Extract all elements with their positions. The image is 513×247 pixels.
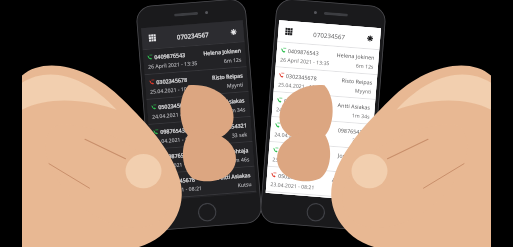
staticText: Kutsu <box>237 180 252 188</box>
staticText: Joni Johtaja <box>220 146 249 155</box>
button[interactable]: 0398765432 <box>268 142 371 174</box>
staticText: Antti Asiakas <box>332 176 365 185</box>
staticText: 0409876543 <box>154 51 186 60</box>
staticText: Antti Asiakas <box>337 101 371 111</box>
staticText: 26 April 2021 - 13:35 <box>148 59 198 70</box>
staticText: Risto Reipas <box>212 71 243 81</box>
staticText: Helena Jokinen <box>336 51 375 61</box>
staticText: Antti Asiakas <box>218 171 251 181</box>
staticText: Helena Jokinen <box>203 46 241 56</box>
button[interactable]: 0502345678 <box>147 92 250 124</box>
staticText: 23.04.2021 - 09:35 <box>272 155 317 166</box>
staticText: 070234567 <box>158 28 228 42</box>
staticText: 11m 46s <box>228 155 250 164</box>
button[interactable]: 0409876543 <box>276 42 379 74</box>
staticText: 1m 34s <box>227 105 246 114</box>
staticText: Antti Asiakas <box>212 96 245 106</box>
staticText: 25.04.2021 - 10:44 <box>278 80 323 91</box>
button[interactable]: Settings <box>364 32 375 44</box>
staticText: 0502345678 <box>284 97 315 106</box>
button[interactable]: Settings <box>227 26 239 37</box>
staticText: Myynti <box>355 86 372 95</box>
button[interactable]: 0502345678 <box>153 167 256 199</box>
staticText: Myynti <box>226 80 244 89</box>
staticText: 0502345678 <box>278 172 309 181</box>
button[interactable]: Menu <box>283 26 295 37</box>
staticText: 0987654321 <box>160 126 191 135</box>
staticText: 0502345678 <box>158 101 189 110</box>
staticText: 0409876543 <box>288 47 319 56</box>
button[interactable]: 0409876543 <box>143 42 246 74</box>
staticText: 0398765432 <box>162 151 193 160</box>
staticText: 33 sek <box>352 136 368 145</box>
staticText: 6m 12s <box>356 61 374 70</box>
button[interactable]: 0987654321 <box>149 117 252 149</box>
button[interactable]: 0398765432 <box>151 142 254 174</box>
button[interactable]: Menu <box>146 32 158 44</box>
staticText: 0987654321 <box>338 126 369 136</box>
staticText: 0502345678 <box>164 175 195 185</box>
staticText: 11m 46s <box>345 161 366 169</box>
staticText: 0302345678 <box>156 76 187 85</box>
staticText: 24.04.2021 - 11:41 <box>154 134 199 145</box>
staticText: Risto Reipas <box>341 76 373 86</box>
button[interactable]: 0502345678 <box>266 167 369 199</box>
staticText: 24.04.2021 - 15:35 <box>152 109 197 120</box>
staticText: 0987654321 <box>216 121 247 131</box>
staticText: 23.04.2021 - 08:21 <box>270 180 315 191</box>
button[interactable]: 0502345678 <box>272 92 375 124</box>
staticText: 26 April 2021 - 13:35 <box>280 55 330 66</box>
staticText: 6m 12s <box>224 55 242 64</box>
staticText: 23.04.2021 - 09:35 <box>156 159 201 169</box>
staticText: 24.04.2021 - 11:41 <box>274 130 319 141</box>
staticText: 23.04.2021 - 08:21 <box>158 184 203 194</box>
staticText: 25.04.2021 - 10:44 <box>150 84 195 95</box>
staticText: 24.04.2021 - 15:35 <box>276 105 321 116</box>
staticText: Joni Johtaja <box>338 151 367 161</box>
staticText: 1m 34s <box>352 111 370 120</box>
staticText: 070234567 <box>294 28 364 42</box>
button[interactable]: 0987654321 <box>270 117 373 149</box>
staticText: 33 sek <box>231 130 248 138</box>
staticText: 0302345678 <box>286 72 317 81</box>
staticText: 0987654321 <box>282 122 313 131</box>
button[interactable]: 0302345678 <box>274 67 377 99</box>
button[interactable]: 0302345678 <box>145 67 248 99</box>
staticText: Kutsu <box>350 186 364 194</box>
